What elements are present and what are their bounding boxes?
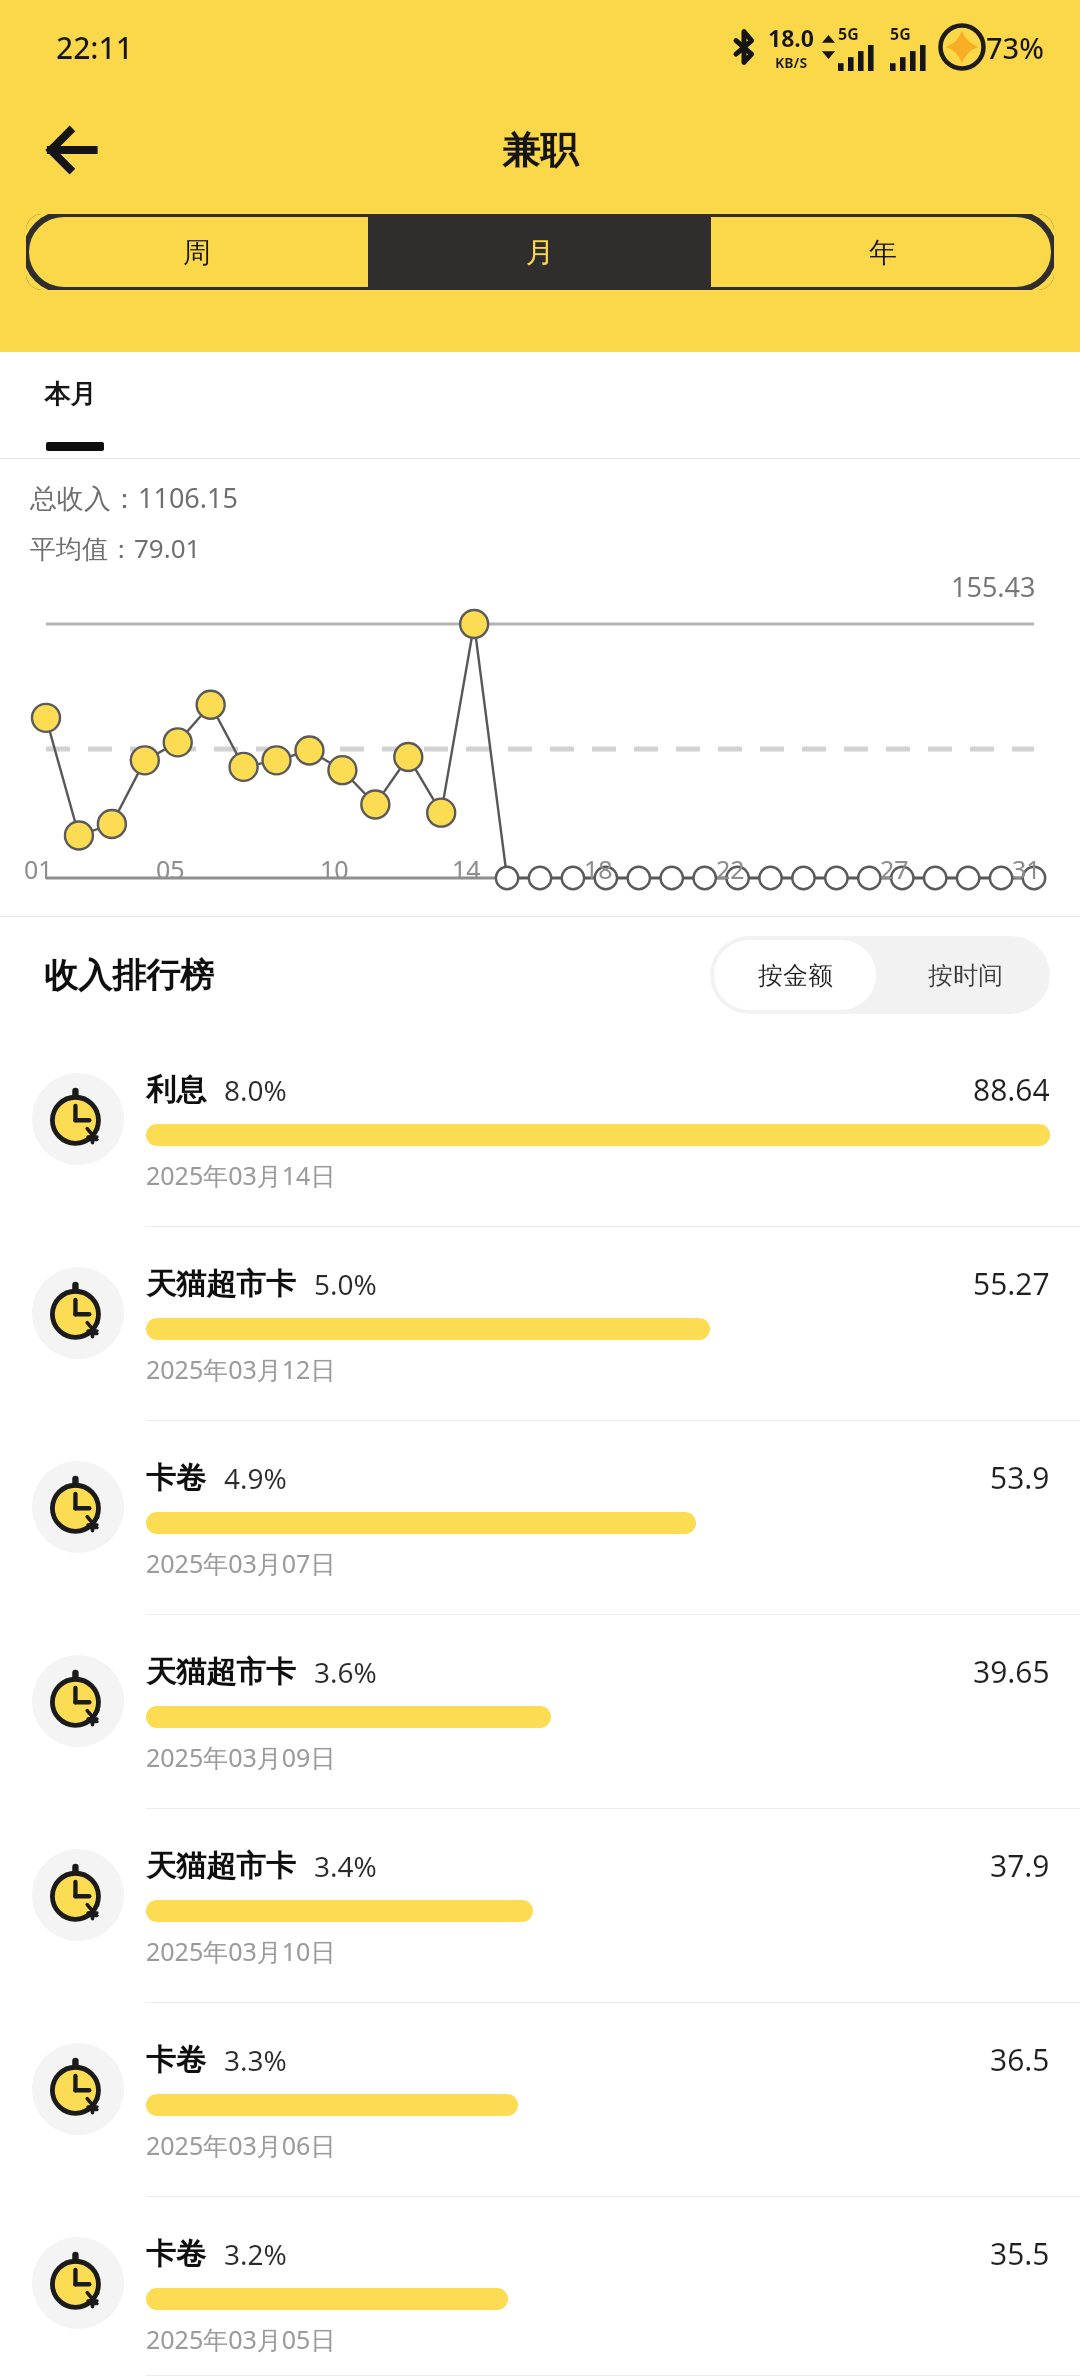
staticText: 卡卷 xyxy=(146,2041,206,2079)
button[interactable]: 卡卷 xyxy=(0,1421,1080,1615)
button[interactable]: Back xyxy=(26,104,118,196)
staticText: 卡卷 xyxy=(146,2235,206,2273)
staticText: KB/S xyxy=(775,53,808,72)
staticText: 37.9 xyxy=(990,1845,1050,1886)
staticText: 2025年03月05日 xyxy=(146,2322,336,2356)
staticText: 36.5 xyxy=(990,2039,1050,2080)
staticText: 按金额 xyxy=(758,960,833,991)
staticText: 天猫超市卡 xyxy=(146,1847,296,1885)
button[interactable]: 年 xyxy=(711,214,1054,290)
staticText: 周 xyxy=(183,235,211,270)
staticText: 2025年03月12日 xyxy=(146,1352,336,1386)
staticText: 14 xyxy=(452,852,481,886)
staticText: 2025年03月09日 xyxy=(146,1740,336,1774)
staticText: 本月 xyxy=(44,378,96,411)
staticText: 天猫超市卡 xyxy=(146,1653,296,1691)
staticText: 35.5 xyxy=(990,2233,1050,2274)
staticText: 2025年03月10日 xyxy=(146,1934,336,1968)
staticText: 55.27 xyxy=(973,1263,1050,1304)
button[interactable]: 按时间 xyxy=(880,936,1050,1014)
staticText: 5.0% xyxy=(314,1265,377,1303)
staticText: 2025年03月06日 xyxy=(146,2128,336,2162)
button[interactable]: 本月 xyxy=(40,352,130,459)
staticText: 卡卷 xyxy=(146,1459,206,1497)
staticText: 3.4% xyxy=(314,1847,377,1885)
staticText: 8.0% xyxy=(224,1071,287,1109)
button[interactable]: 天猫超市卡 xyxy=(0,1809,1080,2003)
staticText: 5G xyxy=(838,23,859,45)
staticText: 5G xyxy=(890,23,911,45)
staticText: 年 xyxy=(869,235,897,270)
button[interactable]: 天猫超市卡 xyxy=(0,1227,1080,1421)
staticText: 22 xyxy=(716,852,745,886)
staticText: 4.9% xyxy=(224,1459,287,1497)
staticText: 3.3% xyxy=(224,2041,287,2079)
staticText: 总收入：1106.15 xyxy=(30,479,238,516)
staticText: 2025年03月07日 xyxy=(146,1546,336,1580)
staticText: 22:11 xyxy=(56,27,133,68)
staticText: 88.64 xyxy=(973,1069,1050,1110)
staticText: 利息 xyxy=(146,1071,206,1109)
staticText: 27 xyxy=(880,852,909,886)
staticText: 平均值：79.01 xyxy=(30,530,201,566)
button[interactable]: 天猫超市卡 xyxy=(0,1615,1080,1809)
button[interactable]: 按金额 xyxy=(714,940,876,1010)
staticText: 2025年03月14日 xyxy=(146,1158,336,1192)
button[interactable]: 月 xyxy=(368,214,711,290)
staticText: 31 xyxy=(1012,852,1041,886)
staticText: 月 xyxy=(526,235,554,270)
staticText: 53.9 xyxy=(990,1457,1050,1498)
staticText: 01 xyxy=(24,852,53,886)
staticText: 73% xyxy=(986,28,1044,67)
staticText: 收入排行榜 xyxy=(44,954,214,997)
staticText: 10 xyxy=(320,852,349,886)
button[interactable]: 卡卷 xyxy=(0,2003,1080,2197)
staticText: 155.43 xyxy=(951,568,1036,605)
staticText: 天猫超市卡 xyxy=(146,1265,296,1303)
button[interactable]: 利息 xyxy=(0,1033,1080,1227)
staticText: 兼职 xyxy=(502,126,578,174)
staticText: 05 xyxy=(156,852,185,886)
staticText: 3.6% xyxy=(314,1653,377,1691)
staticText: 18 xyxy=(584,852,613,886)
staticText: 18.0 xyxy=(768,22,814,53)
button[interactable]: 卡卷 xyxy=(0,2197,1080,2376)
staticText: 按时间 xyxy=(928,960,1003,991)
button[interactable]: 周 xyxy=(26,214,368,290)
staticText: 3.2% xyxy=(224,2235,287,2273)
staticText: 39.65 xyxy=(973,1651,1050,1692)
